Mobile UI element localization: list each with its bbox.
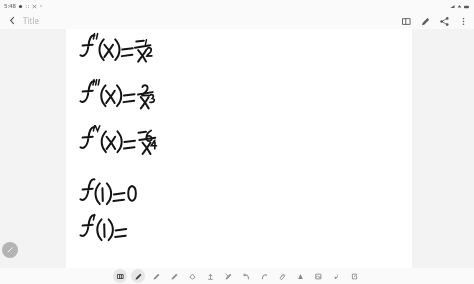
button[interactable]: Redo [257, 269, 271, 283]
button[interactable]: Eraser [185, 269, 199, 283]
button[interactable]: Image [311, 269, 325, 283]
button[interactable]: Marker [149, 269, 163, 283]
button[interactable]: Export [347, 269, 361, 283]
button[interactable]: Select [203, 269, 217, 283]
button[interactable]: Back [3, 12, 21, 29]
button[interactable]: Share [436, 13, 452, 29]
button[interactable]: Ruler [275, 269, 289, 283]
button[interactable]: Pen [131, 269, 145, 283]
button[interactable]: Grid [113, 269, 127, 283]
staticText: 5:48 [4, 2, 16, 10]
button[interactable]: Text [293, 269, 307, 283]
button[interactable]: Edit mode [2, 242, 18, 258]
button[interactable]: Highlighter [167, 269, 181, 283]
button[interactable]: Edit [417, 13, 433, 29]
button[interactable]: Shapes [221, 269, 235, 283]
button[interactable]: More options [455, 13, 471, 29]
staticText: Title [23, 15, 39, 26]
button[interactable]: Pages [398, 13, 414, 29]
button[interactable]: Pointer [329, 269, 343, 283]
button[interactable]: Undo [239, 269, 253, 283]
